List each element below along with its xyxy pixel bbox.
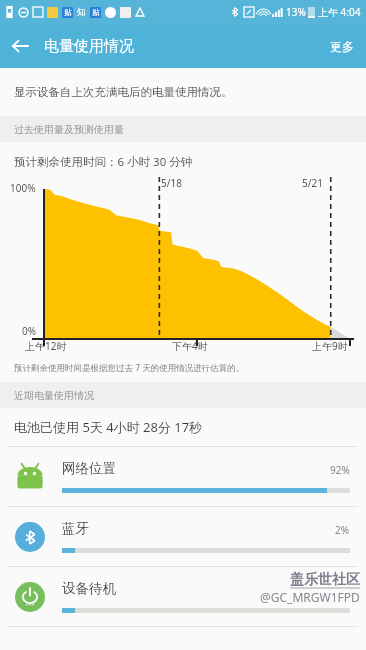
button[interactable]: 更多 (318, 29, 366, 64)
staticText: 盖乐世社区 (290, 571, 360, 589)
staticText: 上午 4:04 (318, 5, 361, 19)
staticText: 5/21 (302, 176, 323, 190)
staticText: 网络位置 (62, 460, 116, 477)
staticText: 上午12时 (25, 339, 67, 353)
staticText: 下午4时 (172, 339, 208, 353)
staticText: @GC_MRGW1FPD (260, 589, 360, 605)
staticText: 过去使用量及预测使用量 (14, 123, 124, 136)
staticText: 2% (335, 523, 350, 537)
button[interactable]: Back (0, 26, 40, 66)
staticText: 更多 (330, 39, 354, 54)
staticText: 5/18 (161, 176, 182, 190)
staticText: 近期电量使用情况 (14, 389, 94, 402)
staticText: 预计剩余使用时间：6 小时 30 分钟 (14, 154, 193, 170)
staticText: 蓝牙 (62, 520, 89, 537)
staticText: 电池已使用 5天 4小时 28分 17秒 (14, 418, 203, 436)
staticText: 贴 (92, 8, 100, 17)
staticText: 100% (10, 181, 36, 195)
staticText: 预计剩余使用时间是根据您过去 7 天的使用情况进行估算的。 (14, 362, 245, 374)
staticText: 贴 (64, 8, 72, 17)
button[interactable]: 蓝牙 (0, 507, 366, 566)
staticText: 13% (286, 5, 306, 19)
staticText: 显示设备自上次充满电后的电量使用情况。 (14, 85, 233, 99)
button[interactable]: 设备待机 (0, 567, 366, 626)
staticText: 知 (77, 7, 86, 18)
staticText: 上午9时 (312, 339, 348, 353)
staticText: 电量使用情况 (44, 37, 134, 56)
button[interactable]: 网络位置 (0, 447, 366, 506)
staticText: 0% (22, 324, 37, 338)
staticText: 92% (330, 463, 350, 477)
staticText: 设备待机 (62, 580, 116, 597)
